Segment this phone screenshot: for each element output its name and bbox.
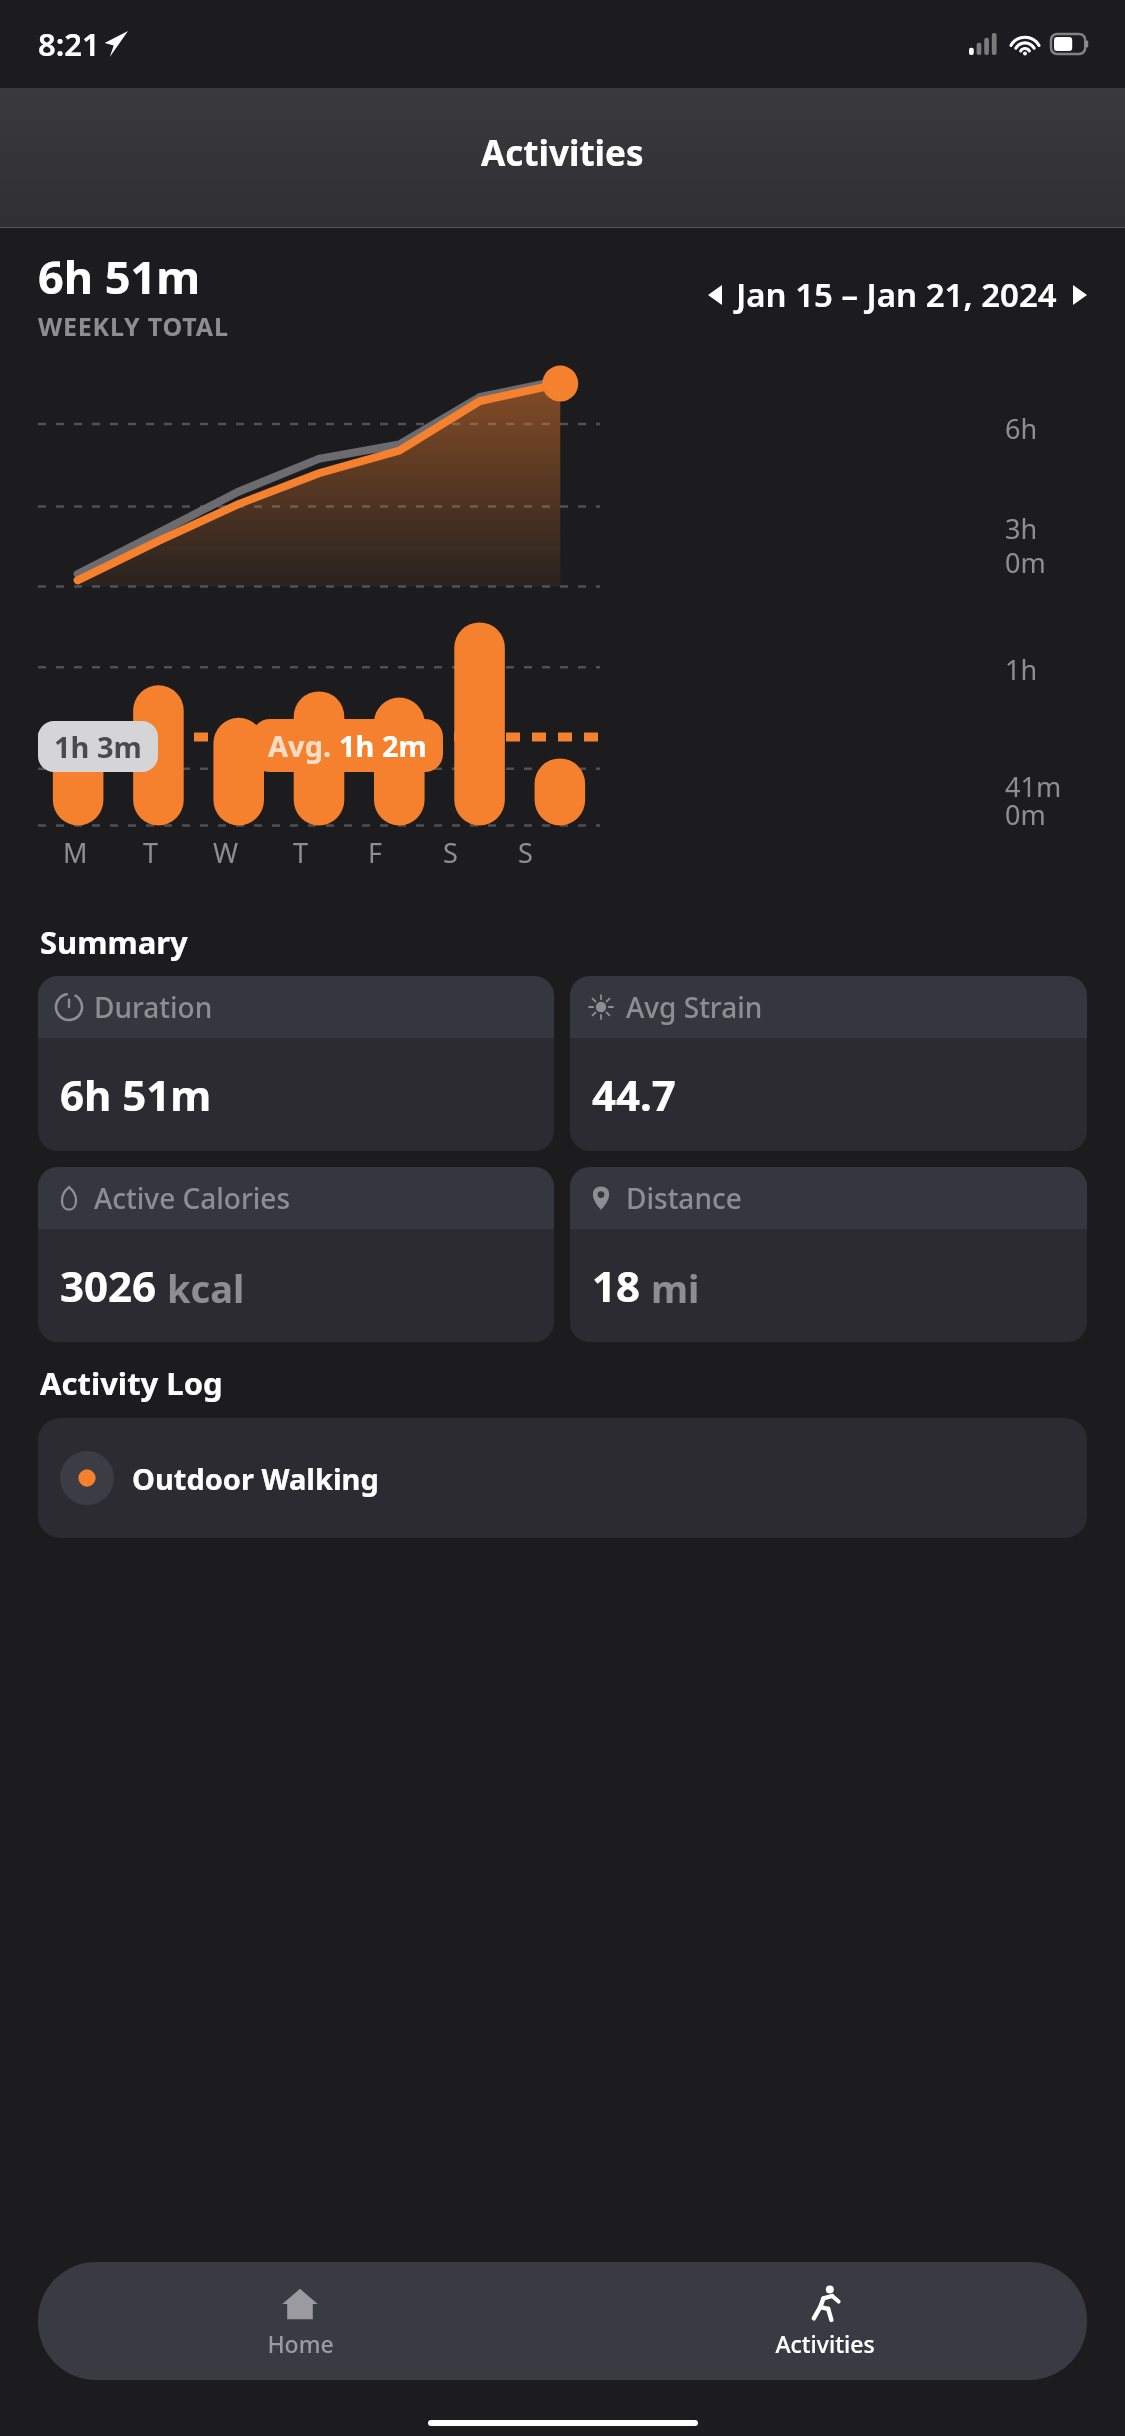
staticText: Avg Strain (626, 988, 763, 1026)
button[interactable]: Active Calories (38, 1167, 554, 1342)
staticText: 1h 2m (339, 726, 427, 765)
staticText: W (213, 834, 239, 871)
staticText: 3026 (60, 1257, 157, 1314)
button[interactable]: Next week (1065, 280, 1095, 310)
staticText: Duration (94, 988, 213, 1026)
staticText: Summary (40, 921, 188, 963)
staticText: WEEKLY TOTAL (38, 309, 229, 343)
staticText: 1h (1005, 651, 1038, 688)
button[interactable]: Home (38, 2262, 562, 2380)
staticText: 6h (1005, 410, 1038, 447)
staticText: Home (267, 2328, 334, 2359)
staticText: 44.7 (592, 1066, 676, 1123)
staticText: Outdoor Walking (132, 1459, 379, 1498)
button[interactable]: Avg Strain (570, 976, 1087, 1151)
button[interactable]: Activities (562, 2262, 1087, 2380)
staticText: Distance (626, 1179, 742, 1217)
staticText: Jan 15 – Jan 21, 2024 (736, 272, 1057, 317)
staticText: Activities (775, 2328, 875, 2359)
staticText: 6h 51m (60, 1066, 212, 1123)
button[interactable]: Outdoor Walking (38, 1418, 1087, 1538)
staticText: T (293, 834, 309, 871)
staticText: mi (651, 1262, 700, 1314)
staticText: Active Calories (94, 1179, 291, 1217)
staticText: kcal (167, 1262, 245, 1314)
staticText: 41m (1005, 768, 1062, 805)
staticText: T (143, 834, 159, 871)
button[interactable]: Distance (570, 1167, 1087, 1342)
staticText: 3h (1005, 510, 1038, 547)
button[interactable]: Previous week (700, 280, 730, 310)
staticText: 18 (592, 1257, 641, 1314)
staticText: S (518, 834, 533, 871)
staticText: 1h 3m (54, 727, 142, 766)
staticText: F (368, 834, 383, 871)
staticText: 0m (1005, 544, 1046, 581)
staticText: Activity Log (40, 1362, 223, 1404)
staticText: 0m (1005, 796, 1046, 833)
staticText: 6h 51m (38, 246, 201, 307)
staticText: Activities (481, 129, 644, 177)
staticText: S (443, 834, 458, 871)
staticText: 8:21 (38, 23, 100, 65)
staticText: M (63, 834, 88, 871)
button[interactable]: Duration (38, 976, 554, 1151)
staticText: Avg. (268, 726, 339, 765)
